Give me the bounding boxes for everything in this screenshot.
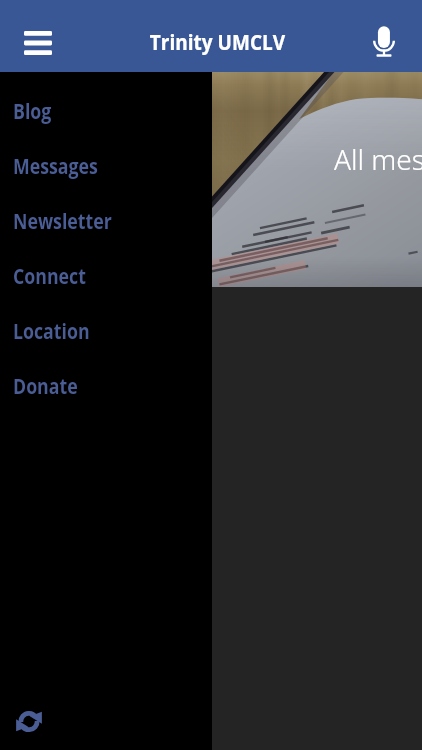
button[interactable]: Location	[0, 303, 212, 358]
staticText: Donate	[13, 371, 78, 400]
button[interactable]: Blog	[0, 83, 212, 138]
button[interactable]: Refresh	[6, 699, 51, 744]
button[interactable]: Messages	[0, 138, 212, 193]
button[interactable]: Voice search	[346, 0, 422, 72]
staticText: Trinity UMCLV	[150, 27, 285, 56]
button[interactable]: Donate	[0, 358, 212, 413]
staticText: Location	[13, 316, 90, 345]
staticText: Messages	[13, 151, 98, 180]
staticText: Connect	[13, 261, 86, 290]
button[interactable]: Open navigation drawer	[0, 0, 76, 72]
staticText: Blog	[13, 96, 52, 125]
staticText: Newsletter	[13, 206, 112, 235]
button[interactable]: Newsletter	[0, 193, 212, 248]
staticText: All messages	[334, 140, 422, 178]
button[interactable]: Connect	[0, 248, 212, 303]
